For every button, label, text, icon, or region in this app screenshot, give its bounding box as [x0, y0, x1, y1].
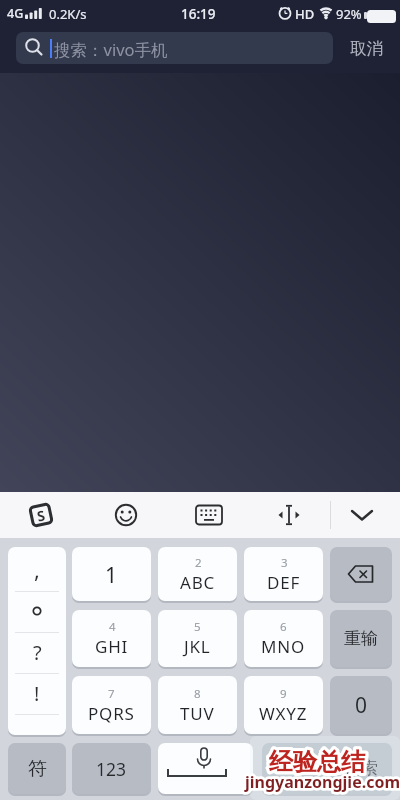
staticText: 符 — [28, 757, 47, 781]
staticText: , — [34, 554, 40, 584]
staticText: 0.2K/s — [49, 5, 87, 23]
staticText: ABC — [180, 571, 216, 594]
button[interactable]: 3 — [244, 547, 323, 601]
button[interactable] — [158, 743, 253, 794]
button[interactable]: , — [8, 547, 66, 735]
button[interactable]: 123 — [72, 743, 151, 794]
staticText: ! — [34, 680, 40, 707]
staticText: 取消 — [350, 38, 383, 59]
staticText: 0 — [355, 691, 368, 720]
staticText: 3 — [281, 555, 288, 571]
staticText: 5 — [194, 619, 201, 635]
staticText: WXYZ — [259, 702, 308, 725]
staticText: HD — [295, 5, 315, 23]
staticText: 经验总结 — [269, 747, 365, 777]
staticText: PQRS — [88, 702, 135, 725]
button[interactable] — [267, 493, 311, 537]
button[interactable] — [340, 493, 384, 537]
button[interactable]: 取消 — [340, 30, 392, 66]
button[interactable]: 2 — [158, 547, 237, 601]
staticText: TUV — [180, 702, 215, 725]
staticText: 6 — [280, 619, 287, 635]
button[interactable]: 9 — [244, 676, 323, 734]
button[interactable]: 搜索 — [262, 743, 392, 794]
staticText: GHI — [95, 635, 129, 658]
staticText: 4G — [7, 5, 24, 22]
staticText: jingyanzongjie.com — [245, 771, 400, 793]
staticText: 7 — [108, 686, 115, 702]
staticText: 4 — [109, 619, 116, 635]
staticText: ? — [33, 639, 42, 666]
button[interactable]: 7 — [72, 676, 151, 734]
staticText: JKL — [184, 635, 211, 658]
staticText: 1 — [105, 560, 118, 589]
button[interactable]: 6 — [244, 610, 323, 667]
button[interactable] — [104, 493, 148, 537]
button[interactable]: S — [19, 493, 63, 537]
button[interactable]: 8 — [158, 676, 237, 734]
button[interactable] — [330, 547, 392, 601]
staticText: S — [35, 505, 47, 526]
button[interactable]: 搜索：vivo手机 — [16, 32, 333, 64]
staticText: 8 — [194, 686, 201, 702]
staticText: MNO — [261, 635, 306, 658]
button[interactable]: 4 — [72, 610, 151, 667]
staticText: 92% — [336, 5, 362, 23]
staticText: 经验总结 — [269, 747, 365, 777]
button[interactable]: 符 — [8, 743, 66, 794]
staticText: 9 — [280, 686, 287, 702]
staticText: 123 — [96, 757, 127, 781]
button[interactable] — [187, 493, 231, 537]
button[interactable]: 1 — [72, 547, 151, 601]
staticText: 搜索：vivo手机 — [54, 38, 168, 61]
staticText: 搜索 — [344, 758, 378, 779]
staticText: 重输 — [344, 628, 378, 649]
button[interactable]: 重输 — [330, 610, 392, 667]
button[interactable]: 0 — [330, 676, 392, 734]
staticText: 16:19 — [181, 5, 216, 23]
staticText: DEF — [267, 571, 301, 594]
staticText: jingyanzongjie.com — [245, 771, 400, 793]
staticText: 2 — [195, 555, 202, 571]
button[interactable]: 5 — [158, 610, 237, 667]
